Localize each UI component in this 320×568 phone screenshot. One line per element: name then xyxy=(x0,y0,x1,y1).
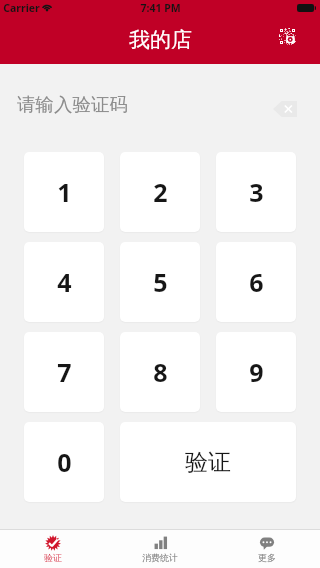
staticText: 消费统计 xyxy=(142,552,178,563)
button[interactable]: 8 xyxy=(120,332,200,412)
button[interactable]: 更多 xyxy=(213,530,320,568)
staticText: 7 xyxy=(57,355,72,389)
button[interactable]: 0 xyxy=(24,422,104,502)
staticText: 0 xyxy=(57,445,72,479)
staticText: 更多 xyxy=(258,552,276,563)
staticText: 2 xyxy=(153,175,168,209)
button[interactable]: Delete xyxy=(273,101,297,117)
staticText: 验证 xyxy=(44,552,62,563)
staticText: Carrier xyxy=(3,1,40,15)
staticText: 7:41 PM xyxy=(140,1,181,15)
button[interactable]: 消费统计 xyxy=(106,530,213,568)
staticText: 3 xyxy=(249,175,264,209)
staticText: 我的店 xyxy=(129,27,192,53)
staticText: 请输入验证码 xyxy=(17,93,128,116)
staticText: 8 xyxy=(153,355,168,389)
staticText: 1 xyxy=(57,175,72,209)
button[interactable]: 6 xyxy=(216,242,296,322)
button[interactable]: 2 xyxy=(120,152,200,232)
staticText: 验证 xyxy=(185,448,231,477)
button[interactable]: Scan QR code xyxy=(279,28,296,45)
button[interactable]: 7 xyxy=(24,332,104,412)
staticText: 5 xyxy=(153,265,168,299)
button[interactable]: 验证 xyxy=(120,422,296,502)
button[interactable]: 1 xyxy=(24,152,104,232)
button[interactable]: 3 xyxy=(216,152,296,232)
staticText: 4 xyxy=(57,265,72,299)
staticText: 6 xyxy=(249,265,264,299)
button[interactable]: 5 xyxy=(120,242,200,322)
button[interactable]: 9 xyxy=(216,332,296,412)
staticText: 9 xyxy=(249,355,264,389)
button[interactable]: 4 xyxy=(24,242,104,322)
button[interactable]: 验证 xyxy=(0,530,106,568)
